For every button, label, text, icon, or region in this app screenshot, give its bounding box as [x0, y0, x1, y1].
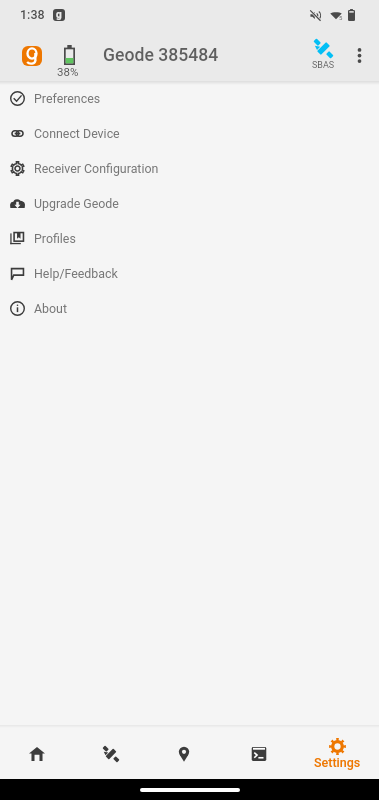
staticText: SBAS	[312, 60, 335, 71]
staticText: Preferences	[34, 91, 101, 106]
staticText: Receiver Configuration	[34, 161, 159, 176]
button[interactable]: Terminal	[227, 728, 291, 779]
staticText: 5	[339, 14, 343, 21]
button[interactable]: Home	[5, 728, 69, 779]
staticText: 1:38	[20, 7, 45, 22]
staticText: About	[34, 301, 67, 316]
button[interactable]: Help/Feedback	[0, 256, 379, 291]
button[interactable]: Satellite status	[79, 728, 143, 779]
staticText: Help/Feedback	[34, 266, 118, 281]
button[interactable]: Preferences	[0, 81, 379, 116]
button[interactable]: Upgrade Geode	[0, 186, 379, 221]
button[interactable]: Connect Device	[0, 116, 379, 151]
staticText: Connect Device	[34, 126, 120, 141]
staticText: Geode 385484	[103, 45, 219, 66]
button[interactable]: Receiver Configuration	[0, 151, 379, 186]
staticText: Profiles	[34, 231, 76, 246]
button[interactable]: SBAS satellite status	[306, 29, 341, 81]
button[interactable]: Profiles	[0, 221, 379, 256]
staticText: Upgrade Geode	[34, 196, 119, 211]
staticText: 38%	[57, 65, 79, 78]
button[interactable]: About	[0, 291, 379, 326]
staticText: g	[56, 9, 62, 21]
button[interactable]: More options	[341, 37, 377, 73]
button[interactable]: Settings	[301, 728, 373, 779]
button[interactable]: Map	[152, 728, 216, 779]
staticText: Settings	[314, 755, 361, 770]
